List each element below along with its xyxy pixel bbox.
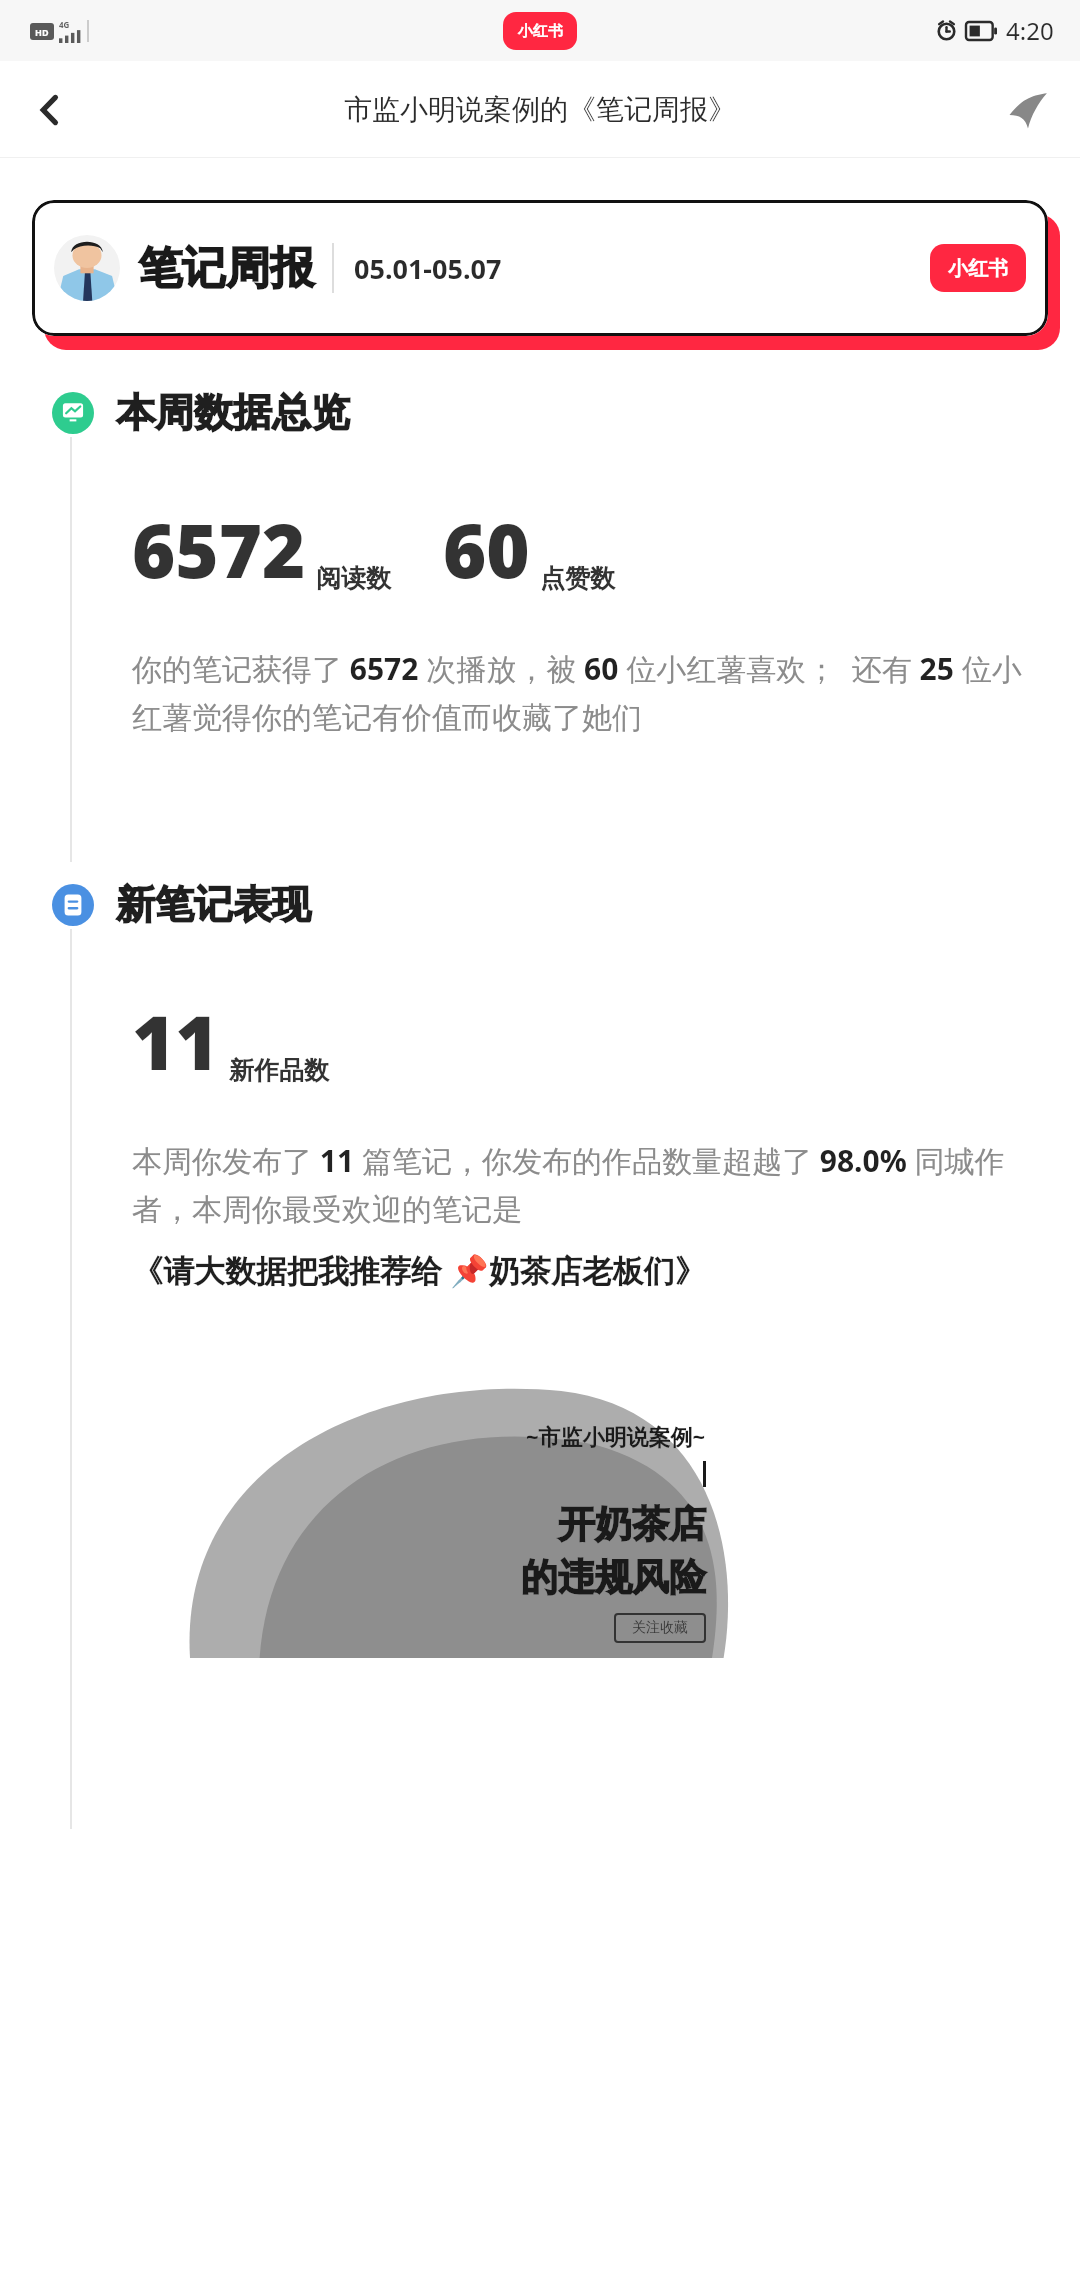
- button[interactable]: ~市监小明说案例~: [132, 1343, 712, 1643]
- staticText: 小红书: [518, 22, 563, 41]
- staticText: 关注收藏: [632, 1619, 688, 1637]
- staticText: 小红书: [948, 256, 1008, 281]
- staticText: 你的笔记获得了 6572 次播放，被 60 位小红薯喜欢； 还有 25 位小红薯…: [132, 648, 1038, 737]
- staticText: 阅读数: [316, 563, 391, 594]
- staticText: 《请大数据把我推荐给 📌奶茶店老板们》: [132, 1249, 706, 1291]
- staticText: 本周你发布了 11 篇笔记，你发布的作品数量超越了 98.0% 同城作者，本周你…: [132, 1140, 1038, 1229]
- staticText: 开奶茶店: [558, 1501, 706, 1548]
- staticText: 本周数据总览: [116, 388, 350, 437]
- staticText: 05.01-05.07: [354, 250, 502, 287]
- staticText: 6572: [132, 499, 306, 600]
- staticText: 4:20: [1006, 14, 1054, 47]
- staticText: HD: [35, 26, 49, 38]
- staticText: 4G: [59, 19, 70, 30]
- staticText: 市监小明说案例的《笔记周报》: [344, 92, 736, 127]
- button[interactable]: 笔记周报: [32, 200, 1048, 336]
- button[interactable]: Share: [992, 74, 1064, 146]
- staticText: 笔记周报: [138, 241, 314, 296]
- staticText: 新作品数: [229, 1055, 329, 1086]
- staticText: 60: [443, 499, 530, 600]
- staticText: ~市监小明说案例~: [526, 1421, 706, 1451]
- staticText: 点赞数: [540, 563, 615, 594]
- button[interactable]: 本周数据总览: [52, 388, 1080, 437]
- button[interactable]: 新笔记表现: [52, 880, 1080, 929]
- staticText: 11: [132, 991, 219, 1092]
- staticText: 新笔记表现: [116, 880, 311, 929]
- button[interactable]: Back: [14, 74, 86, 146]
- staticText: 的违规风险: [521, 1554, 706, 1601]
